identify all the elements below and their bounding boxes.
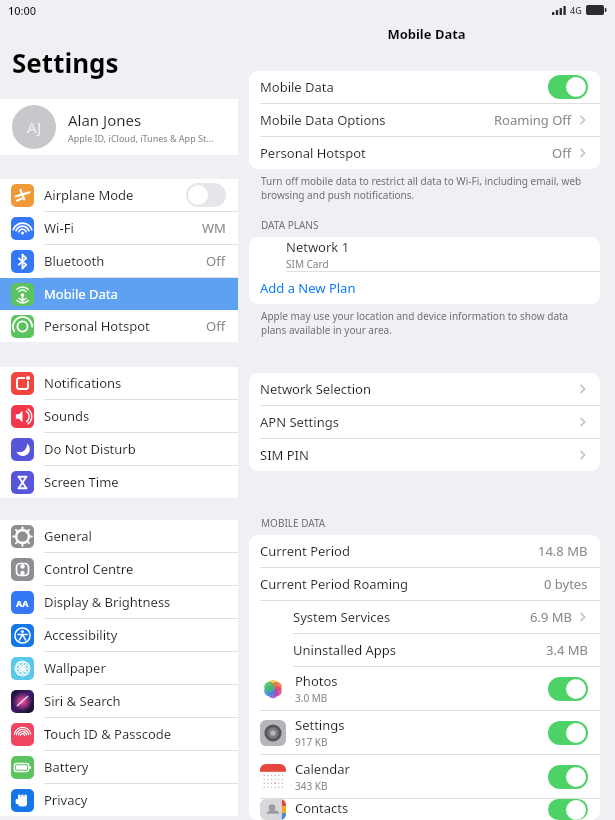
- button[interactable]: Mobile Data: [249, 71, 600, 104]
- staticText: Wi-Fi: [44, 219, 74, 237]
- staticText: Off: [552, 144, 572, 162]
- button[interactable]: [548, 677, 588, 701]
- button[interactable]: AA: [0, 586, 238, 619]
- button[interactable]: Accessibility: [0, 619, 238, 652]
- button[interactable]: Siri & Search: [0, 685, 238, 718]
- staticText: Alan Jones: [68, 110, 142, 130]
- staticText: 6.9 MB: [530, 608, 572, 626]
- button[interactable]: [186, 183, 226, 207]
- button[interactable]: Screen Time: [0, 466, 238, 498]
- button[interactable]: Mobile Data Options: [249, 104, 600, 137]
- staticText: AA: [16, 597, 29, 609]
- button[interactable]: Notifications: [0, 367, 238, 400]
- staticText: Bluetooth: [44, 252, 105, 270]
- staticText: Settings: [12, 45, 119, 80]
- staticText: Do Not Disturb: [44, 440, 136, 458]
- staticText: 917 KB: [295, 735, 328, 749]
- staticText: Current Period: [260, 542, 350, 560]
- button[interactable]: System Services: [249, 601, 600, 634]
- button[interactable]: Photos: [249, 667, 600, 711]
- staticText: 0 bytes: [544, 575, 588, 593]
- staticText: System Services: [293, 608, 391, 626]
- staticText: Turn off mobile data to restrict all dat…: [261, 174, 586, 202]
- staticText: Roaming Off: [494, 111, 572, 129]
- staticText: MOBILE DATA: [261, 516, 326, 530]
- staticText: Apple ID, iCloud, iTunes & App St…: [68, 132, 214, 144]
- staticText: WM: [202, 219, 226, 237]
- staticText: 3.0 MB: [295, 691, 328, 705]
- button[interactable]: [548, 765, 588, 789]
- staticText: Airplane Mode: [44, 186, 134, 204]
- staticText: SIM PIN: [260, 446, 309, 464]
- button[interactable]: Bluetooth: [0, 245, 238, 278]
- staticText: Add a New Plan: [260, 279, 356, 297]
- button[interactable]: Control Centre: [0, 553, 238, 586]
- staticText: Uninstalled Apps: [293, 641, 397, 659]
- staticText: Touch ID & Passcode: [44, 725, 172, 743]
- staticText: Mobile Data: [44, 285, 118, 303]
- staticText: Display & Brightness: [44, 593, 171, 611]
- staticText: Screen Time: [44, 473, 119, 491]
- staticText: 3.4 MB: [546, 641, 588, 659]
- button[interactable]: Uninstalled Apps: [249, 634, 600, 667]
- staticText: Privacy: [44, 791, 88, 809]
- staticText: Mobile Data: [260, 78, 334, 96]
- button[interactable]: [548, 721, 588, 745]
- button[interactable]: Settings: [249, 711, 600, 755]
- button[interactable]: Current Period: [249, 535, 600, 568]
- staticText: 10:00: [8, 3, 37, 18]
- staticText: Off: [206, 252, 226, 270]
- staticText: 4G: [570, 4, 582, 16]
- button[interactable]: Sounds: [0, 400, 238, 433]
- staticText: Personal Hotspot: [260, 144, 366, 162]
- button[interactable]: AJ: [0, 99, 238, 155]
- button[interactable]: Wallpaper: [0, 652, 238, 685]
- staticText: SIM Card: [286, 257, 329, 271]
- button[interactable]: Add a New Plan: [249, 272, 600, 304]
- button[interactable]: Contacts: [249, 799, 600, 820]
- staticText: Notifications: [44, 374, 122, 392]
- button[interactable]: Touch ID & Passcode: [0, 718, 238, 751]
- button[interactable]: Network 1: [249, 237, 600, 272]
- staticText: Settings: [295, 716, 345, 734]
- button[interactable]: Network Selection: [249, 373, 600, 406]
- staticText: Accessibility: [44, 626, 118, 644]
- staticText: Photos: [295, 672, 338, 690]
- staticText: DATA PLANS: [261, 218, 319, 232]
- button[interactable]: Airplane Mode: [0, 179, 238, 212]
- button[interactable]: [548, 75, 588, 99]
- button[interactable]: Mobile Data: [0, 278, 238, 310]
- button[interactable]: SIM PIN: [249, 439, 600, 471]
- staticText: 14.8 MB: [538, 542, 588, 560]
- button[interactable]: General: [0, 520, 238, 553]
- staticText: Battery: [44, 758, 89, 776]
- staticText: Off: [206, 317, 226, 335]
- staticText: Network 1: [286, 238, 350, 256]
- staticText: Network Selection: [260, 380, 372, 398]
- staticText: Control Centre: [44, 560, 134, 578]
- staticText: Sounds: [44, 407, 90, 425]
- staticText: Apple may use your location and device i…: [261, 309, 586, 337]
- button[interactable]: Personal Hotspot: [249, 137, 600, 169]
- staticText: Siri & Search: [44, 692, 121, 710]
- staticText: AJ: [27, 117, 42, 137]
- staticText: Personal Hotspot: [44, 317, 150, 335]
- staticText: Mobile Data Options: [260, 111, 386, 129]
- button[interactable]: APN Settings: [249, 406, 600, 439]
- button[interactable]: Wi-Fi: [0, 212, 238, 245]
- staticText: Mobile Data: [238, 25, 615, 43]
- staticText: 343 KB: [295, 779, 328, 793]
- button[interactable]: [548, 799, 588, 820]
- staticText: Calendar: [295, 760, 350, 778]
- staticText: General: [44, 527, 92, 545]
- button[interactable]: Do Not Disturb: [0, 433, 238, 466]
- button[interactable]: Battery: [0, 751, 238, 784]
- button[interactable]: Privacy: [0, 784, 238, 816]
- staticText: Wallpaper: [44, 659, 106, 677]
- button[interactable]: Calendar: [249, 755, 600, 799]
- staticText: Contacts: [295, 799, 349, 817]
- staticText: APN Settings: [260, 413, 339, 431]
- button[interactable]: Personal Hotspot: [0, 310, 238, 342]
- button[interactable]: Current Period Roaming: [249, 568, 600, 601]
